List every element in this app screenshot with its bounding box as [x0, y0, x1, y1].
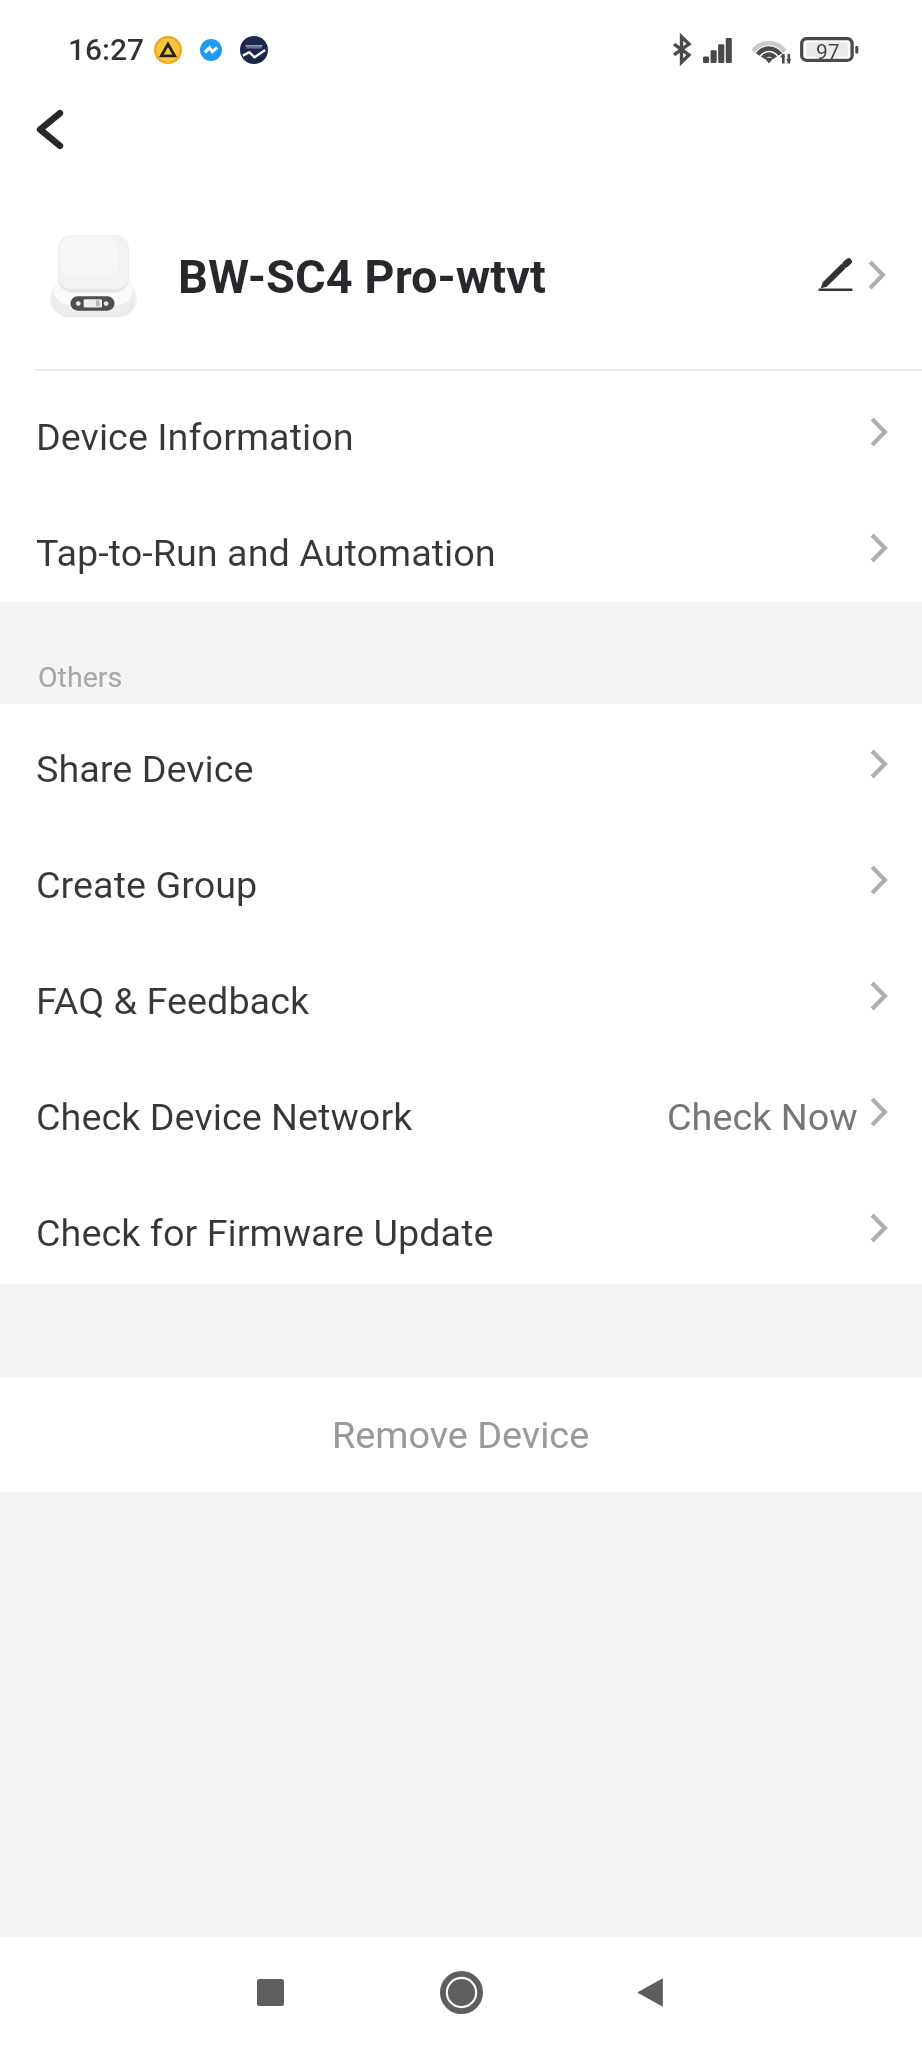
button[interactable]: Tap-to-Run and Automation — [0, 490, 922, 606]
button[interactable]: FAQ & Feedback — [0, 938, 922, 1054]
staticText: 97 — [816, 40, 840, 65]
button[interactable]: Back — [610, 1952, 690, 2032]
staticText: Tap-to-Run and Automation — [36, 531, 496, 575]
staticText: Share Device — [36, 747, 254, 791]
button[interactable]: Back — [17, 96, 83, 162]
staticText: Check Now — [667, 1095, 858, 1139]
button[interactable]: Recent apps — [230, 1952, 310, 2032]
staticText: Create Group — [36, 863, 258, 907]
button[interactable]: Check Device Network — [0, 1054, 922, 1170]
button[interactable]: Share Device — [0, 706, 922, 822]
staticText: Remove Device — [332, 1413, 590, 1457]
button[interactable]: Rename device — [807, 249, 863, 305]
button[interactable]: Remove Device — [0, 1378, 922, 1492]
staticText: Device Information — [36, 415, 354, 459]
button[interactable]: Check for Firmware Update — [0, 1170, 922, 1286]
staticText: BW-SC4 Pro-wtvt — [178, 249, 546, 304]
staticText: 16:27 — [68, 32, 145, 67]
button[interactable]: Home — [421, 1952, 501, 2032]
button[interactable]: Create Group — [0, 822, 922, 938]
staticText: Others — [38, 661, 123, 694]
staticText: Check Device Network — [36, 1095, 413, 1139]
button[interactable]: BW-SC4 Pro-wtvt — [0, 222, 922, 332]
staticText: Check for Firmware Update — [36, 1211, 494, 1255]
staticText: FAQ & Feedback — [36, 979, 310, 1023]
button[interactable]: Device Information — [0, 374, 922, 490]
